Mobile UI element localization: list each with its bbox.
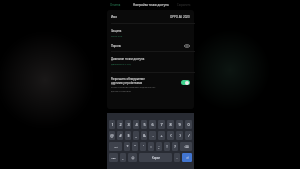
button[interactable]: - <box>149 131 156 140</box>
staticText: Защита <box>111 29 122 33</box>
button[interactable]: 1 <box>109 120 115 129</box>
staticText: ☺ <box>131 156 135 159</box>
staticText: 1 <box>111 122 114 127</box>
button[interactable]: Защита <box>107 27 194 39</box>
button[interactable]: Пароль <box>107 41 194 50</box>
staticText: Диапазон 2.4 ГГц <box>111 62 131 65</box>
button[interactable]: " <box>132 142 138 151</box>
staticText: _ <box>135 133 137 138</box>
button[interactable]: , <box>120 153 126 162</box>
staticText: & <box>143 133 146 138</box>
staticText: Кирил <box>152 156 160 160</box>
button[interactable]: 9 <box>176 120 183 129</box>
staticText: ( <box>170 133 172 138</box>
button[interactable]: 4 <box>133 120 139 129</box>
button[interactable]: & <box>141 131 147 140</box>
staticText: ! <box>166 144 168 149</box>
staticText: ; <box>158 144 160 149</box>
staticText: ) <box>179 133 181 138</box>
staticText: ⌫ <box>184 145 189 148</box>
button[interactable]: =\< <box>109 142 122 151</box>
button[interactable]: ) <box>176 131 183 140</box>
staticText: / <box>188 133 190 138</box>
staticText: 8 <box>169 122 172 127</box>
staticText: 4 <box>135 122 138 127</box>
staticText: # <box>119 133 122 138</box>
staticText: 3 <box>127 122 130 127</box>
button[interactable]: ☺ <box>128 153 137 162</box>
staticText: =\< <box>114 145 118 148</box>
staticText: OPPO A5 2020 <box>170 15 190 19</box>
staticText: 2 <box>119 122 122 127</box>
button[interactable]: Отмена <box>110 3 121 7</box>
button[interactable]: Диапазон точки доступа <box>107 55 194 67</box>
button[interactable]: ' <box>140 142 146 151</box>
button[interactable]: ? <box>172 142 178 151</box>
staticText: Диапазон точки доступа <box>111 57 145 61</box>
button[interactable]: ⌫ <box>180 142 192 151</box>
staticText: Пароль <box>111 44 122 48</box>
staticText: 7 <box>160 122 163 127</box>
staticText: ' <box>143 144 144 149</box>
staticText: Отмена <box>110 3 121 7</box>
staticText: 5 <box>143 122 146 127</box>
button[interactable]: ⏎ <box>182 153 192 162</box>
staticText: : <box>150 144 152 149</box>
button[interactable]: 2 <box>117 120 123 129</box>
button[interactable]: $ <box>125 131 131 140</box>
staticText: 0 <box>187 122 190 127</box>
staticText: Разрешить обнаружение другими устройства… <box>111 77 145 85</box>
staticText: 6 <box>151 122 154 127</box>
button[interactable]: : <box>148 142 154 151</box>
button[interactable]: _ <box>133 131 139 140</box>
button[interactable]: 3 <box>125 120 131 129</box>
button[interactable]: 7 <box>158 120 165 129</box>
staticText: ABC <box>111 156 116 159</box>
button[interactable]: Показать пароль <box>184 43 190 49</box>
staticText: Сохранить <box>177 3 191 7</box>
button[interactable]: Разрешить обнаружение другими устройства… <box>107 75 194 92</box>
staticText: Настройка точки доступа <box>133 3 169 7</box>
button[interactable]: Имя <box>107 12 194 21</box>
button[interactable]: ( <box>167 131 174 140</box>
button[interactable]: ! <box>164 142 170 151</box>
staticText: Имя <box>111 15 117 19</box>
button[interactable]: # <box>117 131 123 140</box>
button[interactable]: . <box>174 153 180 162</box>
staticText: , <box>122 155 124 160</box>
staticText: " <box>134 144 136 149</box>
button[interactable]: / <box>185 131 192 140</box>
staticText: * <box>126 144 129 149</box>
staticText: $ <box>127 133 130 138</box>
button[interactable]: * <box>124 142 130 151</box>
staticText: . <box>176 155 178 160</box>
button[interactable]: 5 <box>141 120 147 129</box>
button[interactable]: Сохранить <box>177 3 191 7</box>
button[interactable]: ABC <box>109 153 118 162</box>
button[interactable]: ; <box>156 142 162 151</box>
staticText: - <box>152 133 154 138</box>
staticText: WPA2 PSK <box>111 34 123 37</box>
button[interactable]: 8 <box>167 120 174 129</box>
button[interactable]: @ <box>109 131 115 140</box>
staticText: Этому устройству разрешено подключаться … <box>111 86 156 92</box>
button[interactable]: 6 <box>149 120 156 129</box>
staticText: ⏎ <box>186 156 189 159</box>
button[interactable]: 0 <box>185 120 192 129</box>
button[interactable]: Кирил <box>139 153 172 162</box>
button[interactable]: Разрешить обнаружение <box>181 80 190 85</box>
staticText: ? <box>174 144 176 149</box>
staticText: @ <box>110 133 114 138</box>
button[interactable]: + <box>158 131 165 140</box>
staticText: + <box>160 133 163 138</box>
staticText: 9 <box>178 122 181 127</box>
